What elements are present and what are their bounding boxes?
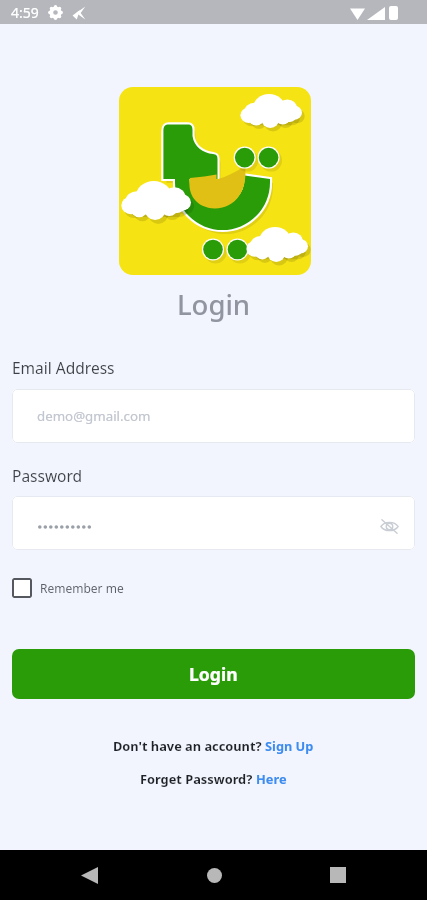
staticText: demo@gmail.com bbox=[37, 407, 151, 425]
staticText: Don't have an account? bbox=[113, 737, 265, 754]
button[interactable]: Home bbox=[195, 856, 233, 894]
button[interactable]: Login bbox=[12, 649, 415, 699]
button[interactable]: Show password bbox=[373, 510, 405, 542]
staticText: 4:59 bbox=[11, 3, 39, 22]
button[interactable]: Back bbox=[70, 856, 108, 894]
staticText: Password bbox=[12, 465, 83, 486]
button[interactable]: demo@gmail.com bbox=[12, 389, 415, 443]
staticText: Email Address bbox=[12, 357, 115, 378]
button[interactable]: Sign Up bbox=[265, 737, 314, 754]
button[interactable]: Recent apps bbox=[319, 856, 357, 894]
button[interactable]: Remember me bbox=[12, 578, 124, 598]
button[interactable]: Show password bbox=[12, 496, 415, 550]
staticText: Login bbox=[189, 662, 238, 686]
staticText: Remember me bbox=[40, 580, 124, 596]
staticText: Login bbox=[0, 286, 427, 323]
button[interactable]: Here bbox=[256, 770, 287, 787]
staticText: Forget Password? bbox=[140, 770, 256, 787]
